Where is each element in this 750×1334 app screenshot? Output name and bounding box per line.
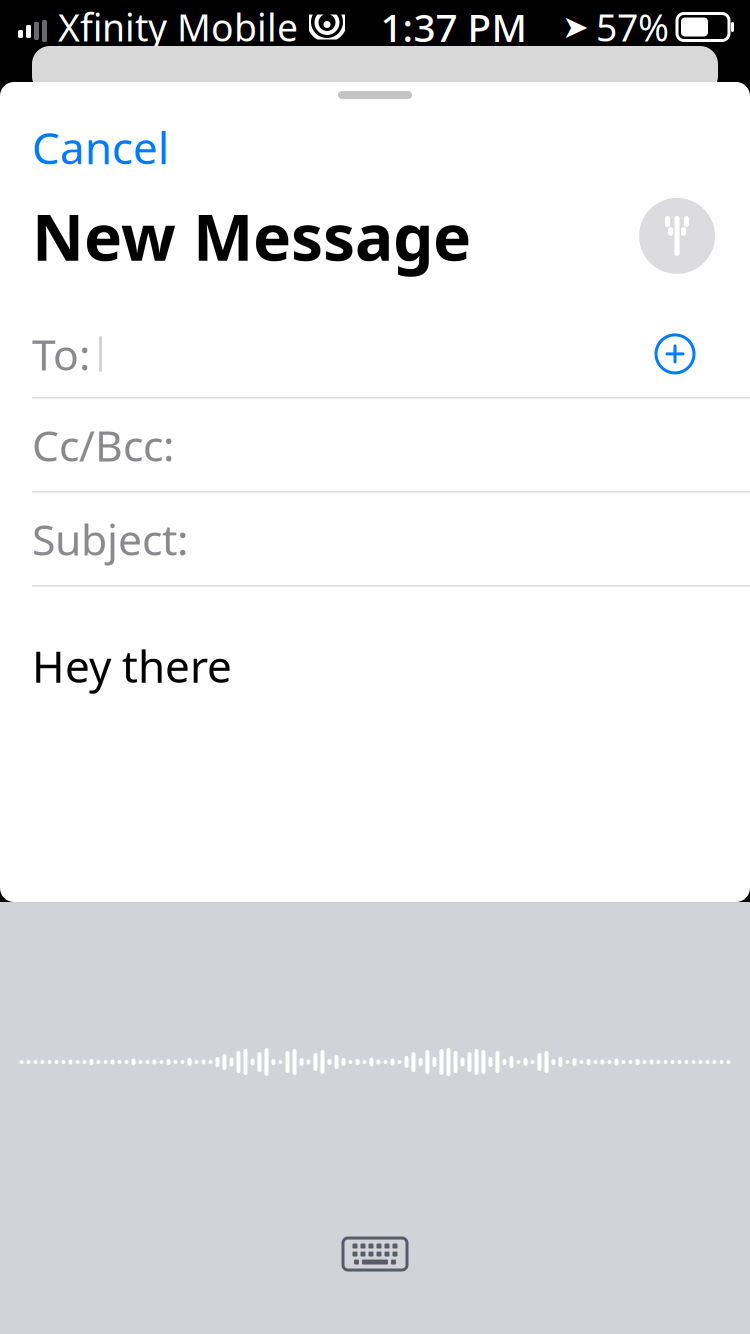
staticText: Cc/Bcc: [32,417,174,473]
button[interactable]: Send [639,198,715,274]
button[interactable]: To: [0,310,750,398]
staticText: Hey there [32,636,232,695]
button[interactable]: Cancel [26,111,175,183]
staticText: 57% [596,2,669,52]
staticText: ➤ [562,9,589,45]
staticText: New Message [32,193,471,278]
button[interactable]: Show keyboard [327,1222,423,1286]
staticText: To: [32,326,90,382]
staticText: Subject: [32,511,188,567]
button[interactable]: Cc/Bcc: [0,398,750,492]
button[interactable]: Subject: [0,492,750,586]
staticText: Cancel [32,118,169,176]
staticText: Xfinity Mobile [58,2,298,52]
staticText: 1:37 PM [380,1,526,53]
